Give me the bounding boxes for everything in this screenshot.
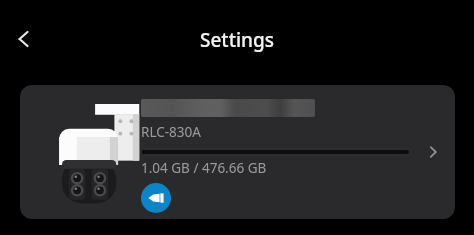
button[interactable]: Spotlight bbox=[141, 183, 171, 213]
staticText: RLC-830A bbox=[141, 123, 201, 141]
button[interactable]: RLC-830A bbox=[20, 85, 455, 219]
staticText: Settings bbox=[0, 27, 474, 53]
button[interactable]: Open device settings bbox=[415, 134, 451, 170]
staticText: 1.04 GB / 476.66 GB bbox=[141, 159, 267, 177]
button[interactable]: Back bbox=[2, 17, 46, 61]
